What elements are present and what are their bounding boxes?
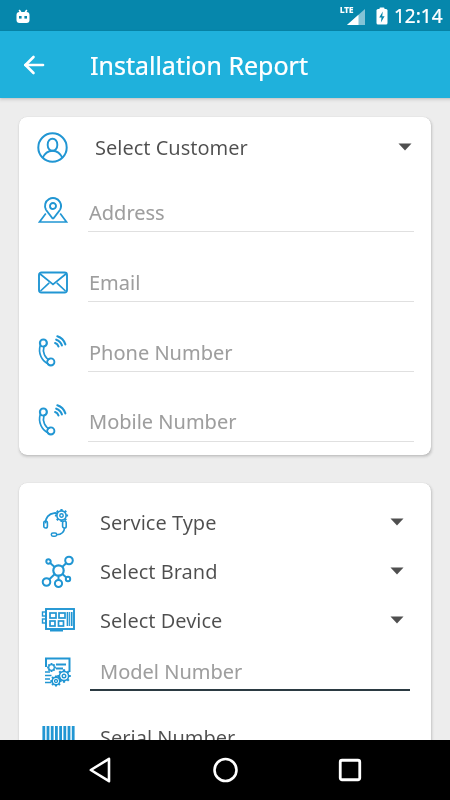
staticText: Select Device [100,607,223,634]
button[interactable]: Serial Number [19,711,431,740]
button[interactable]: Select Customer [19,117,431,177]
staticText: Select Brand [100,558,218,585]
button[interactable] [336,756,364,784]
button[interactable]: Model Number [19,645,431,697]
staticText: Address [89,199,165,226]
staticText: Service Type [100,509,217,536]
staticText: Mobile Number [89,408,237,435]
staticText: Phone Number [89,339,233,366]
button[interactable] [211,756,239,784]
button[interactable]: Address [19,177,431,247]
button[interactable] [86,756,114,784]
button[interactable]: Phone Number [19,317,431,387]
button[interactable] [22,53,46,77]
button[interactable]: Email [19,247,431,317]
button[interactable]: Service Type [19,497,431,547]
staticText: Select Customer [95,134,248,161]
staticText: Installation Report [90,48,308,82]
button[interactable]: Mobile Number [19,387,431,455]
staticText: Email [89,269,141,296]
staticText: LTE [340,4,354,15]
staticText: 12:14 [394,3,443,29]
button[interactable]: Select Brand [19,547,431,595]
button[interactable]: Select Device [19,595,431,645]
staticText: Serial Number [100,724,236,740]
staticText: Model Number [100,658,243,685]
